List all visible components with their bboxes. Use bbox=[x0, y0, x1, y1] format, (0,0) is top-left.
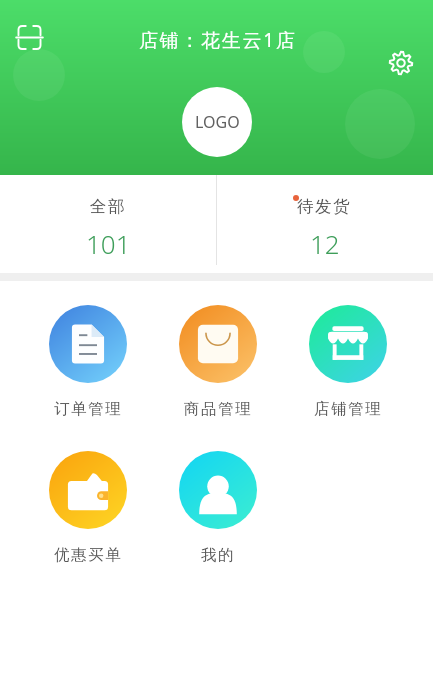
staticText: 店铺：花生云1店 bbox=[139, 27, 297, 53]
button[interactable]: Scan QR code bbox=[15, 23, 44, 52]
staticText: 待发货 bbox=[297, 196, 352, 217]
staticText: 101 bbox=[86, 226, 131, 261]
staticText: 优惠买单 bbox=[54, 545, 123, 565]
button[interactable]: 全部 bbox=[0, 175, 216, 273]
button[interactable]: 优惠买单 bbox=[23, 451, 153, 565]
button[interactable]: 待发货 bbox=[216, 175, 433, 273]
button[interactable]: Settings bbox=[387, 49, 415, 77]
staticText: 12 bbox=[310, 226, 340, 261]
staticText: 店铺管理 bbox=[314, 399, 383, 419]
staticText: 我的 bbox=[201, 545, 236, 565]
staticText: 全部 bbox=[90, 196, 127, 217]
button[interactable]: 商品管理 bbox=[153, 305, 283, 419]
button[interactable]: 我的 bbox=[153, 451, 283, 565]
button[interactable]: 店铺管理 bbox=[283, 305, 413, 419]
staticText: 商品管理 bbox=[184, 399, 253, 419]
staticText: LOGO bbox=[195, 111, 240, 133]
button[interactable]: LOGO bbox=[182, 87, 252, 157]
staticText: 订单管理 bbox=[54, 399, 123, 419]
button[interactable]: 订单管理 bbox=[23, 305, 153, 419]
